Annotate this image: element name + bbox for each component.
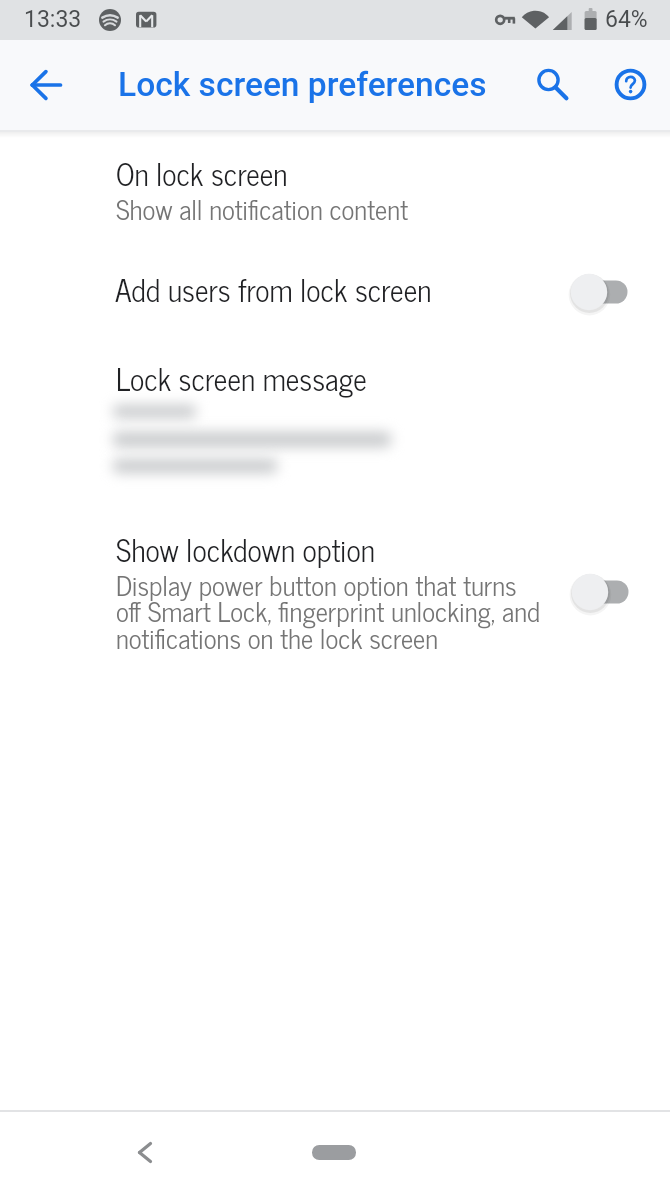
staticText: notifications on the lock screen <box>116 615 439 659</box>
button[interactable]: Show lockdown option <box>0 518 670 668</box>
staticText: Show lockdown option <box>116 524 375 573</box>
button[interactable] <box>524 56 572 104</box>
staticText: 13:33 <box>24 6 82 33</box>
button[interactable] <box>121 1138 169 1186</box>
staticText: off Smart Lock, fingerprint unlocking, a… <box>116 588 540 632</box>
staticText: Display power button option that turns <box>116 562 517 606</box>
staticText: Lock screen preferences <box>118 65 487 104</box>
button[interactable] <box>568 568 640 616</box>
button[interactable] <box>606 60 654 108</box>
staticText: Add users from lock screen <box>115 264 432 313</box>
staticText: 64% <box>605 6 648 33</box>
staticText: Lock screen message <box>116 353 367 402</box>
button[interactable] <box>567 268 639 316</box>
staticText: Show all notification content <box>116 186 408 230</box>
button[interactable] <box>22 61 70 109</box>
button[interactable]: Lock screen message <box>0 345 670 490</box>
staticText: On lock screen <box>116 148 288 197</box>
button[interactable]: On lock screen <box>0 140 670 240</box>
button[interactable]: Add users from lock screen <box>0 252 670 332</box>
button[interactable] <box>300 1132 368 1172</box>
